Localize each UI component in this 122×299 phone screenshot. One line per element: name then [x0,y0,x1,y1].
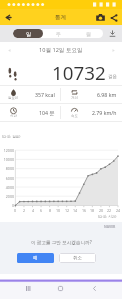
staticText: 20 [97,208,105,213]
button[interactable]: 월 [73,29,103,38]
staticText: 주 [56,31,61,37]
staticText: 통계 [55,14,67,21]
button[interactable]: 속도 [61,104,122,121]
button[interactable]: Camera [93,10,108,25]
button[interactable]: 칼로리 [0,86,60,103]
staticText: 10000 [0,157,14,162]
button[interactable]: 예 [17,253,54,263]
staticText: 0 [0,203,14,208]
staticText: 10732 [52,60,106,82]
staticText: 18 [88,208,96,213]
staticText: 월 [86,31,91,37]
staticText: 이 광고를 그만 보시겠습니까? [31,239,92,245]
staticText: 2 [20,208,28,213]
button[interactable]: Recents [14,282,41,295]
staticText: 4 [29,208,37,213]
button[interactable]: 주 [43,29,73,38]
staticText: 22 [105,208,113,213]
staticText: 6 [37,208,45,213]
staticText: 6.98 km [97,91,117,98]
staticText: 10월 12일 토요일 [39,46,83,54]
button[interactable]: 거리 [61,86,122,103]
staticText: 4000 [0,185,14,190]
staticText: 10 [54,208,62,213]
button[interactable]: Home [47,282,74,295]
staticText: 거리 [71,96,78,100]
staticText: 12000 [0,148,14,153]
staticText: 104 분 [39,109,55,116]
staticText: 8 [46,208,54,213]
staticText: 12 [63,208,71,213]
staticText: 예 [33,255,38,261]
button[interactable]: 취소 [59,253,96,263]
button[interactable]: Share [106,10,121,25]
button[interactable]: 시간 [0,104,60,121]
staticText: (단위: 걸음) [2,134,21,139]
staticText: 속도 [71,114,78,118]
staticText: 357 kcal [35,91,55,98]
staticText: 14 [71,208,79,213]
button[interactable]: Back [0,9,16,25]
staticText: 2.79 km/h [92,109,117,116]
staticText: 취소 [73,255,83,261]
staticText: 8000 [0,166,14,171]
staticText: (단위: 시간) [98,214,117,219]
staticText: 걸음 [108,74,118,80]
button[interactable]: 일 [13,29,43,38]
staticText: 16 [80,208,88,213]
button[interactable]: Download [107,28,118,39]
staticText: 시간 [10,114,17,118]
staticText: 일 [26,31,31,37]
staticText: 24 [114,208,122,213]
staticText: 2000 [0,194,14,199]
staticText: NAVER [104,224,116,229]
staticText: 칼로리 [8,96,19,100]
staticText: 6000 [0,176,14,181]
staticText: 0 [11,208,19,213]
button[interactable]: Back [81,282,108,295]
